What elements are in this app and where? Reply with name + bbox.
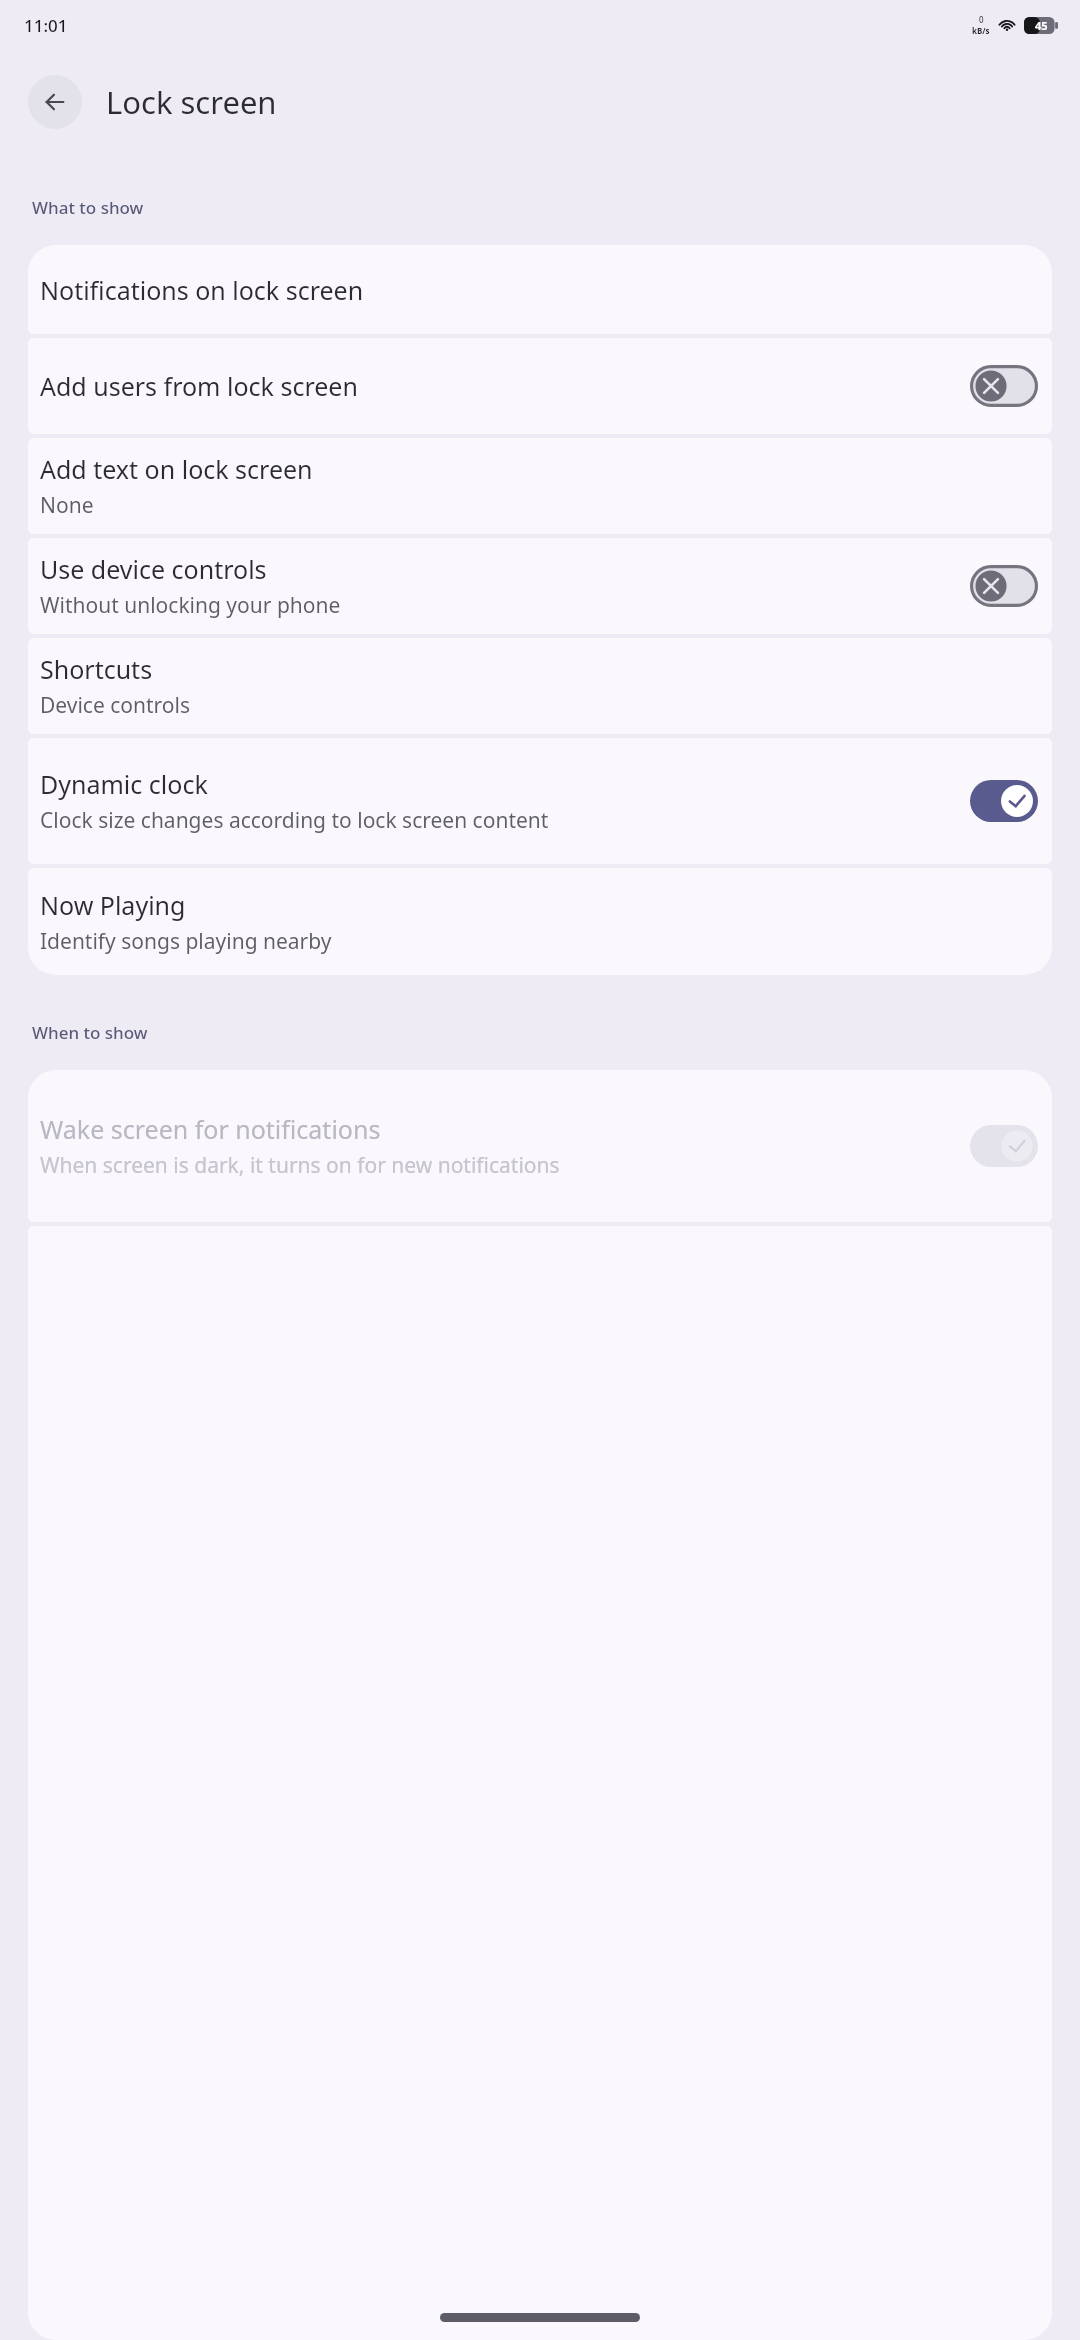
staticText: When to show xyxy=(32,1021,148,1044)
button[interactable]: Wake screen for notifications xyxy=(28,1070,1052,1222)
staticText: Use device controls xyxy=(40,552,267,586)
button[interactable]: Dynamic clock xyxy=(28,738,1052,864)
staticText: kB/s xyxy=(972,25,990,36)
staticText: 11:01 xyxy=(24,14,68,37)
staticText: When screen is dark, it turns on for new… xyxy=(40,1151,560,1180)
staticText: None xyxy=(40,491,94,520)
staticText: Clock size changes according to lock scr… xyxy=(40,806,549,835)
staticText: Dynamic clock xyxy=(40,767,208,801)
staticText: Device controls xyxy=(40,691,191,720)
staticText: Lock screen xyxy=(106,81,277,123)
staticText: Wake screen for notifications xyxy=(40,1112,381,1146)
button[interactable]: Off xyxy=(970,365,1038,407)
staticText: What to show xyxy=(32,196,144,219)
staticText: Now Playing xyxy=(40,888,186,922)
staticText: Add text on lock screen xyxy=(40,452,313,486)
staticText: Identify songs playing nearby xyxy=(40,927,332,956)
button[interactable]: Use device controls xyxy=(28,538,1052,634)
button[interactable]: On xyxy=(970,780,1038,822)
button[interactable]: Shortcuts xyxy=(28,638,1052,734)
button[interactable]: Add users from lock screen xyxy=(28,338,1052,434)
button[interactable]: Back xyxy=(28,75,82,129)
staticText: Without unlocking your phone xyxy=(40,591,341,620)
button[interactable]: Off xyxy=(970,565,1038,607)
staticText: Notifications on lock screen xyxy=(40,273,364,307)
staticText: 45 xyxy=(1035,18,1048,33)
staticText: Shortcuts xyxy=(40,652,153,686)
button[interactable]: On xyxy=(970,1125,1038,1167)
staticText: Add users from lock screen xyxy=(40,369,358,403)
staticText: 0 xyxy=(979,14,984,25)
button[interactable]: Notifications on lock screen xyxy=(28,245,1052,334)
button[interactable]: Now Playing xyxy=(28,868,1052,975)
button[interactable]: Add text on lock screen xyxy=(28,438,1052,534)
